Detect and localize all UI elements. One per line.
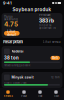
button[interactable]: Pasar xyxy=(16,88,32,100)
staticText: Beli xyxy=(52,56,58,60)
staticText: ton per ha xyxy=(39,24,51,27)
button[interactable]: Lihat detail xyxy=(4,31,20,36)
staticText: Lihat semua xyxy=(43,40,61,44)
button[interactable]: Lihat semua xyxy=(43,40,61,44)
staticText: update hari ini xyxy=(39,27,56,30)
button[interactable]: Akun xyxy=(48,88,64,100)
button[interactable]: Beranda xyxy=(0,88,16,100)
staticText: Tersedia hingga besok xyxy=(4,64,30,67)
staticText: Perkiraan produksi xyxy=(39,13,51,20)
staticText: Harga xyxy=(4,15,13,18)
staticText: Beranda xyxy=(3,95,12,98)
staticText: Soybean produk xyxy=(12,7,51,12)
staticText: Stabil dalam 7 hari xyxy=(4,81,27,84)
staticText: 9:41 xyxy=(3,1,12,5)
button[interactable]: Beli xyxy=(50,56,60,60)
staticText: 12 ton xyxy=(51,76,60,79)
staticText: 383 rb xyxy=(39,18,54,24)
staticText: Lihat detail xyxy=(7,30,16,37)
staticText: Pasar petani xyxy=(3,40,23,44)
button[interactable]: Chat xyxy=(32,88,48,100)
staticText: 4.75 xyxy=(4,20,18,28)
staticText: 38 ton xyxy=(4,55,19,61)
staticText: Akun xyxy=(53,95,58,98)
staticText: Chat xyxy=(37,95,42,98)
staticText: sekarang xyxy=(4,17,18,21)
staticText: Pasar xyxy=(21,95,27,98)
staticText: Minyak sawit xyxy=(12,75,34,79)
staticText: Kedelai xyxy=(12,49,24,53)
